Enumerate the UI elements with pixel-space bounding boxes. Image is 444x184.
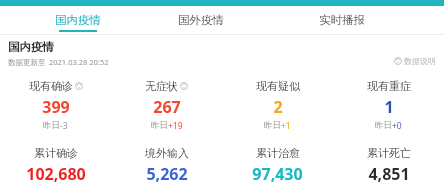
button[interactable]: 国内疫情 xyxy=(26,6,130,32)
staticText: 267 xyxy=(153,96,181,118)
staticText: 4,851 xyxy=(368,163,410,183)
staticText: 国外疫情 xyxy=(178,13,224,27)
staticText: +0 xyxy=(392,120,402,132)
staticText: 102,680 xyxy=(26,163,86,183)
staticText: 昨日 xyxy=(264,120,281,131)
staticText: 5,262 xyxy=(146,163,188,183)
staticText: 数据更新至 xyxy=(8,58,46,67)
staticText: 2021.03.28 20:52 xyxy=(49,57,109,67)
button[interactable]: 累计死亡 xyxy=(333,145,444,184)
staticText: 97,430 xyxy=(252,163,303,183)
staticText: 实时播报 xyxy=(319,13,365,27)
staticText: +19 xyxy=(168,120,183,132)
button[interactable]: 现有疑似 xyxy=(222,78,333,133)
button[interactable]: 现有确诊 xyxy=(0,78,111,133)
staticText: 昨日 xyxy=(375,120,392,131)
staticText: 现有重症 xyxy=(367,79,411,93)
staticText: 昨日 xyxy=(43,120,60,131)
staticText: 现有疑似 xyxy=(256,79,300,93)
staticText: 境外输入 xyxy=(145,146,189,160)
button[interactable]: 无症状 xyxy=(111,78,222,133)
button[interactable]: 实时播报 xyxy=(271,6,412,32)
other: 数据说明 xyxy=(394,57,402,65)
staticText: 国内疫情 xyxy=(8,40,54,54)
button[interactable]: 境外输入 xyxy=(111,145,222,184)
staticText: +1 xyxy=(281,120,291,132)
staticText: 昨日 xyxy=(151,120,168,131)
staticText: 累计死亡 xyxy=(367,146,411,160)
staticText: 399 xyxy=(42,96,70,118)
staticText: -3 xyxy=(60,120,68,132)
staticText: 累计确诊 xyxy=(34,146,78,160)
staticText: 数据说明 xyxy=(404,56,436,66)
staticText: 国内疫情 xyxy=(55,13,101,27)
button[interactable]: 国外疫情 xyxy=(130,6,271,32)
button[interactable]: 现有重症 xyxy=(333,78,444,133)
button[interactable]: 累计确诊 xyxy=(0,145,111,184)
staticText: 累计治愈 xyxy=(256,146,300,160)
staticText: 现有确诊 xyxy=(29,79,73,93)
button[interactable]: 累计治愈 xyxy=(222,145,333,184)
staticText: 1 xyxy=(384,96,394,118)
staticText: 无症状 xyxy=(145,79,178,93)
button[interactable]: 数据说明 xyxy=(394,56,436,67)
staticText: 2 xyxy=(273,96,283,118)
